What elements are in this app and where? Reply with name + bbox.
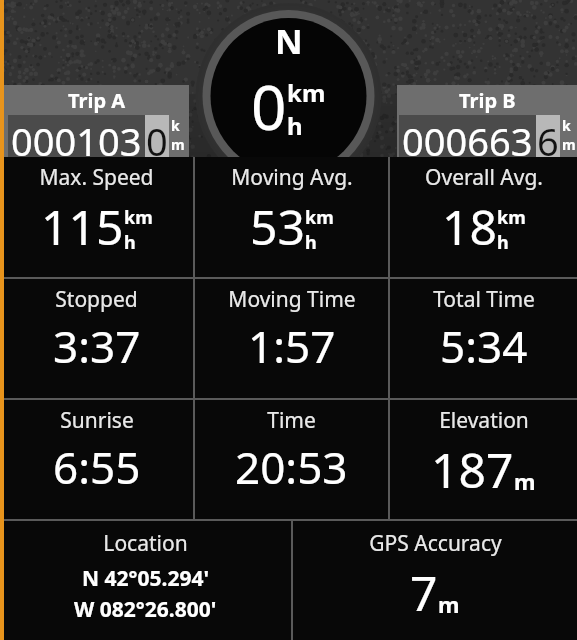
button[interactable]: Location (0, 521, 291, 640)
staticText: h (287, 109, 303, 142)
staticText: 3:37 (53, 316, 141, 376)
staticText: 53 (250, 194, 305, 259)
staticText: Elevation (439, 406, 529, 435)
staticText: h (124, 230, 136, 255)
staticText: 000103 (11, 115, 142, 157)
button[interactable]: Moving Avg. (195, 157, 388, 277)
staticText: 18 (442, 194, 497, 259)
button[interactable]: Max. Speed (0, 157, 193, 277)
button[interactable]: Compass and speed (251, 18, 326, 148)
staticText: 1:57 (248, 316, 336, 376)
staticText: 5:34 (440, 316, 528, 376)
staticText: 20:53 (235, 437, 348, 497)
staticText: 115 (41, 194, 124, 259)
button[interactable]: Sunrise (0, 400, 193, 519)
staticText: 6 (537, 115, 559, 157)
staticText: Total Time (433, 285, 535, 314)
staticText: Stopped (55, 285, 138, 314)
staticText: Trip B (459, 87, 516, 114)
staticText: 187 (431, 437, 514, 502)
staticText: 000663 (402, 115, 533, 157)
staticText: 6:55 (53, 437, 141, 497)
staticText: m (438, 589, 460, 619)
button[interactable]: Moving Time (195, 279, 388, 398)
staticText: km (305, 205, 334, 230)
staticText: N (275, 18, 303, 64)
button[interactable]: Stopped (0, 279, 193, 398)
staticText: k (171, 116, 180, 135)
staticText: Time (267, 406, 316, 435)
staticText: GPS Accuracy (369, 529, 502, 558)
staticText: km (287, 76, 326, 109)
staticText: m (171, 135, 185, 154)
button[interactable]: Trip B (397, 85, 577, 157)
staticText: W 082°26.800' (74, 595, 217, 624)
button[interactable]: Elevation (390, 400, 577, 519)
staticText: Overall Avg. (425, 163, 543, 192)
staticText: m (562, 135, 576, 154)
staticText: 0 (251, 64, 287, 148)
staticText: Location (103, 529, 188, 558)
button[interactable]: GPS Accuracy (293, 521, 577, 640)
staticText: Moving Time (228, 285, 356, 314)
button[interactable]: Total Time (390, 279, 577, 398)
staticText: m (514, 466, 536, 496)
staticText: 7 (410, 560, 438, 625)
staticText: Sunrise (60, 406, 134, 435)
staticText: km (124, 205, 153, 230)
staticText: h (305, 230, 317, 255)
staticText: h (497, 230, 509, 255)
staticText: Trip A (68, 87, 126, 114)
staticText: 0 (146, 115, 168, 157)
button[interactable]: Time (195, 400, 388, 519)
staticText: k (562, 116, 571, 135)
button[interactable]: Trip A (4, 85, 189, 157)
staticText: N 42°05.294' (82, 564, 210, 593)
staticText: Max. Speed (39, 163, 154, 192)
staticText: Moving Avg. (231, 163, 353, 192)
button[interactable]: Overall Avg. (390, 157, 577, 277)
staticText: km (497, 205, 526, 230)
